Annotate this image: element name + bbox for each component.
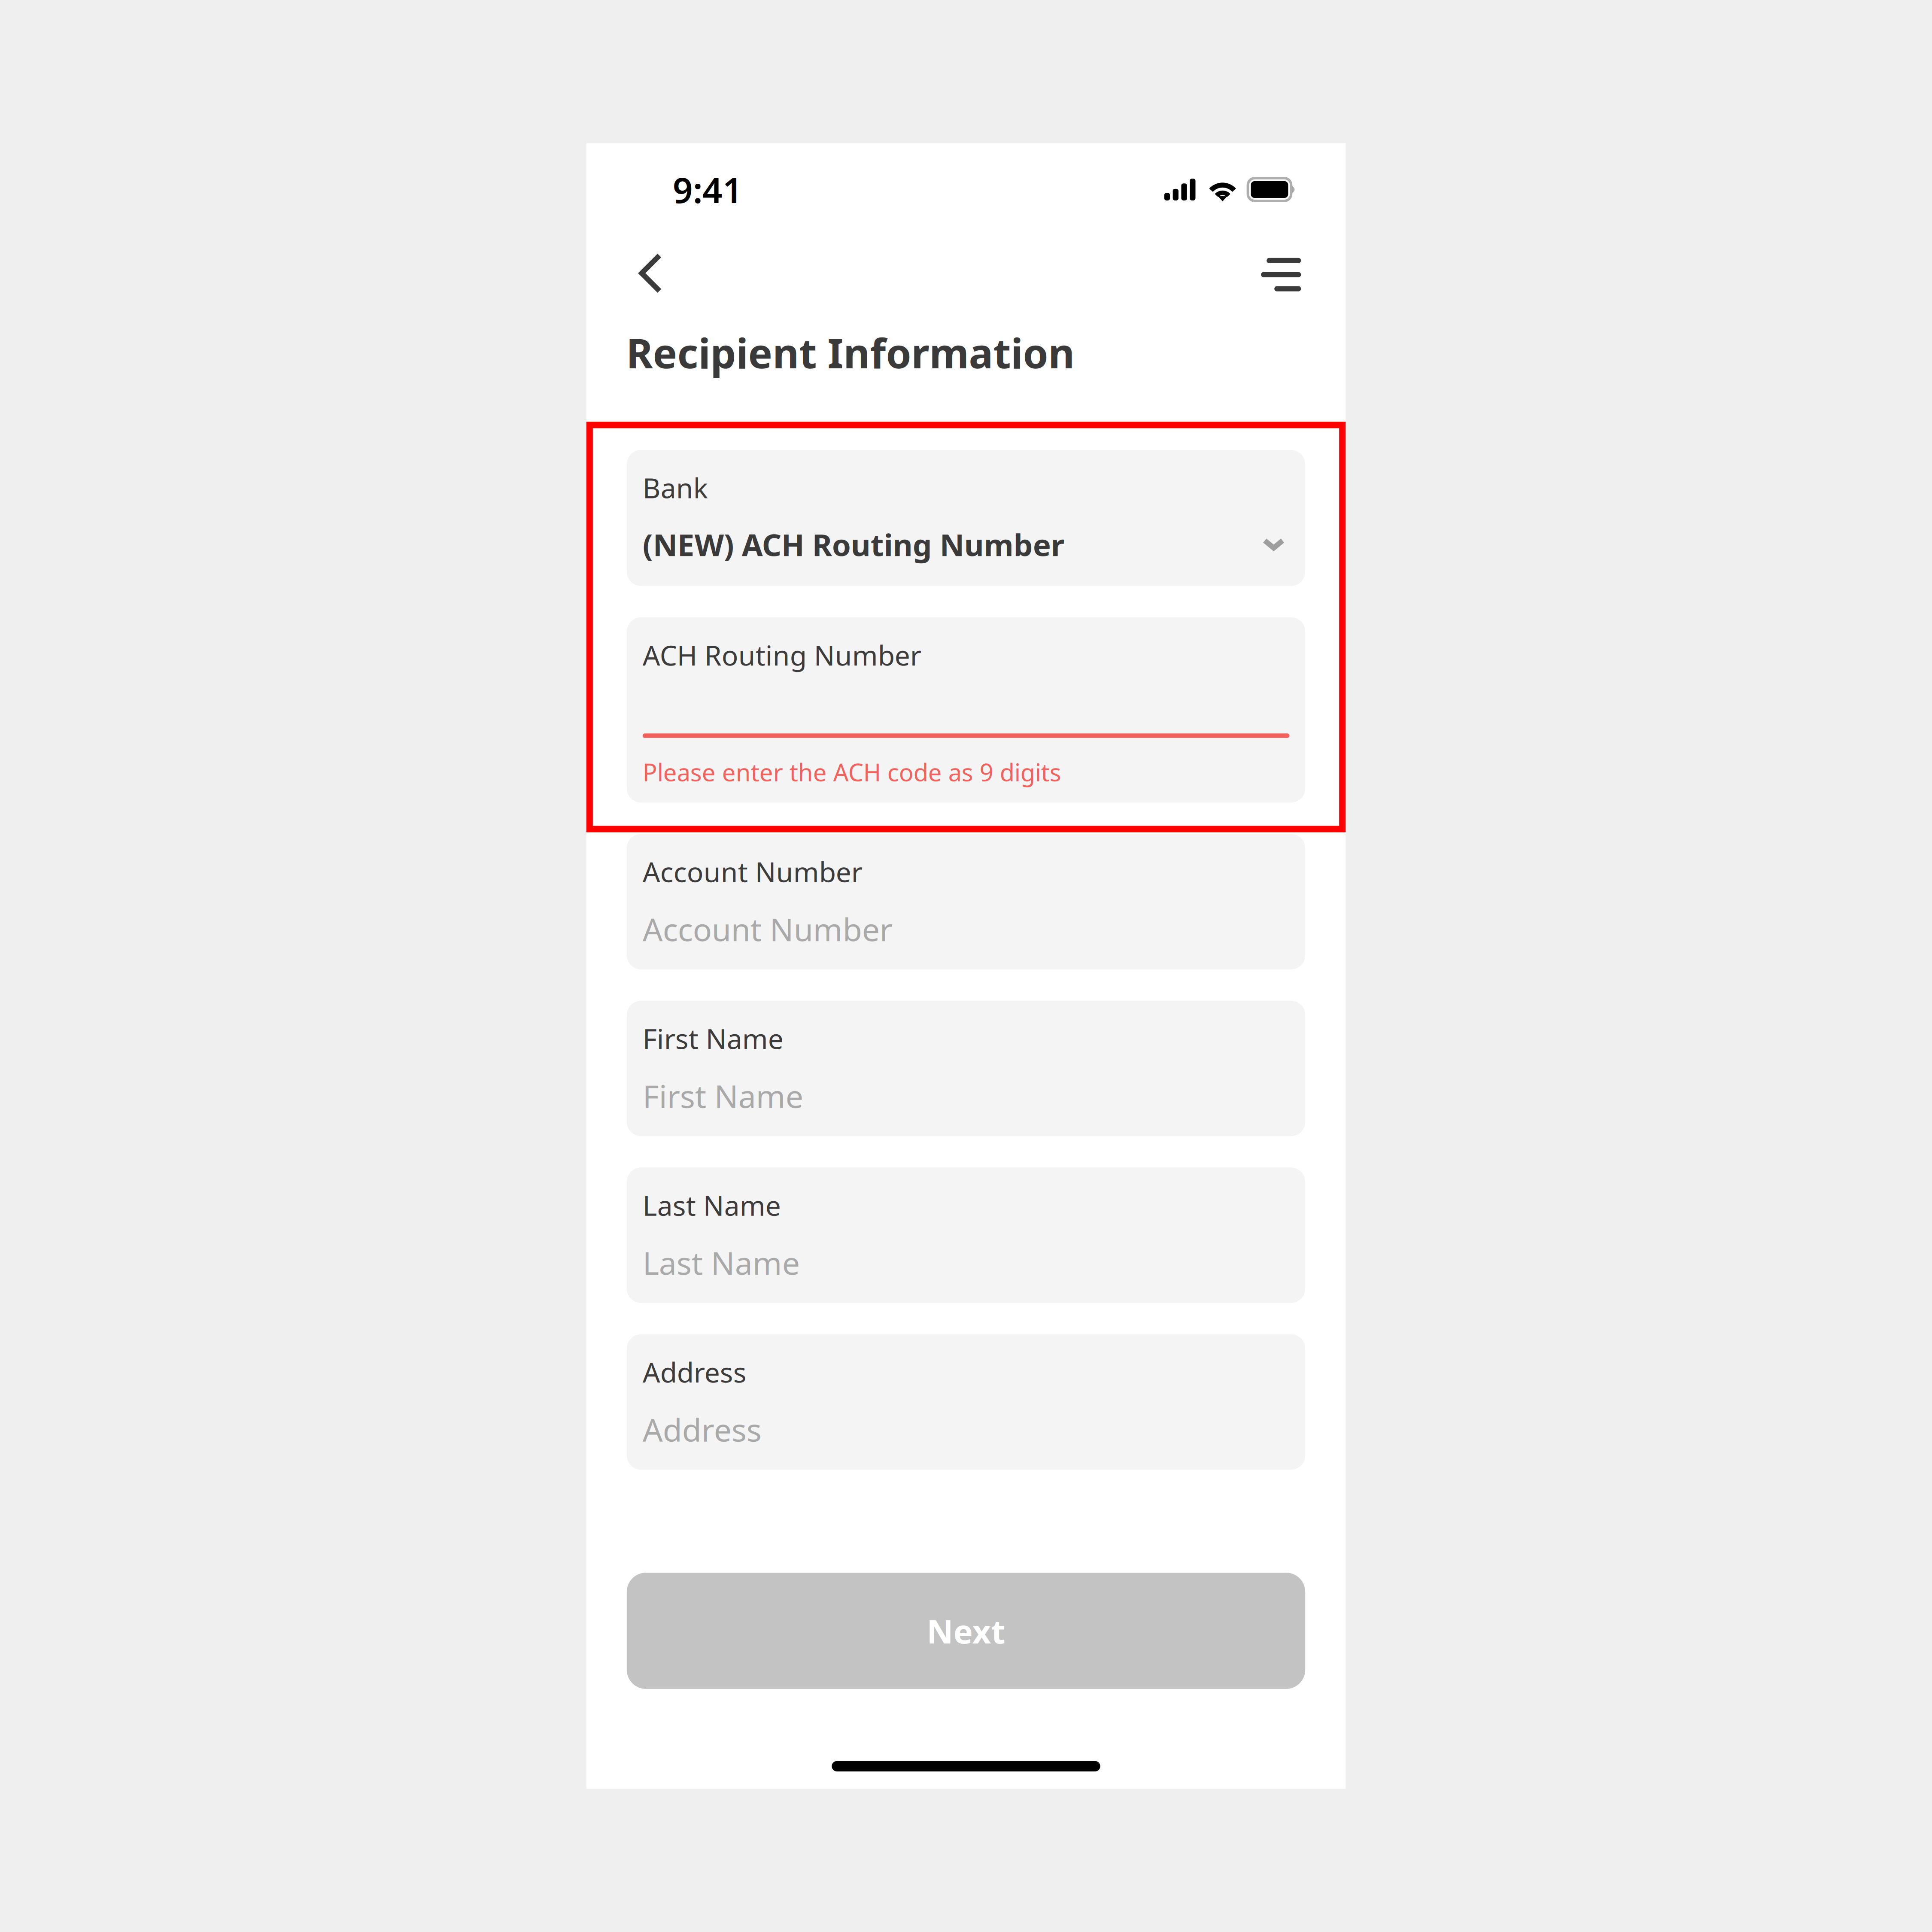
staticText: Next xyxy=(927,1609,1005,1652)
staticText: Recipient Information xyxy=(626,326,1075,379)
button[interactable]: Account Number xyxy=(627,834,1305,969)
button[interactable]: Back xyxy=(639,235,716,318)
staticText: Address xyxy=(643,1354,746,1390)
staticText: First Name xyxy=(643,1075,803,1117)
staticText: 9:41 xyxy=(673,166,743,213)
staticText: (NEW) ACH Routing Number xyxy=(643,524,1065,564)
staticText: Address xyxy=(643,1408,762,1450)
button[interactable]: Menu xyxy=(1224,236,1301,316)
staticText: ACH Routing Number xyxy=(643,637,921,673)
staticText: Account Number xyxy=(643,853,862,890)
button[interactable]: First Name xyxy=(627,1001,1305,1136)
button[interactable]: Address xyxy=(627,1334,1305,1470)
button[interactable]: ACH Routing Number xyxy=(627,617,1305,803)
staticText: Please enter the ACH code as 9 digits xyxy=(643,756,1061,788)
button[interactable]: Next xyxy=(627,1573,1305,1689)
button[interactable]: Last Name xyxy=(627,1168,1305,1303)
staticText: Bank xyxy=(643,469,708,506)
button[interactable]: Bank xyxy=(627,450,1305,586)
staticText: Last Name xyxy=(643,1242,800,1283)
staticText: Last Name xyxy=(643,1187,781,1223)
staticText: First Name xyxy=(643,1020,783,1057)
staticText: Account Number xyxy=(643,908,892,950)
